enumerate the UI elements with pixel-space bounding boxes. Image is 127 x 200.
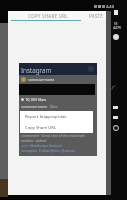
staticText: Nice	[50, 104, 58, 109]
staticText: user #landscape #nature	[21, 143, 62, 148]
staticText: Copy Share URL	[25, 125, 57, 131]
staticText: someusername	[21, 104, 48, 109]
staticText: Report Inappropriate	[25, 114, 67, 120]
staticText: 88	[114, 22, 118, 26]
staticText: 4:40	[106, 4, 114, 9]
staticText: Instagram	[21, 66, 52, 75]
staticText: another wicked	[21, 138, 47, 143]
staticText: 10,393 likes	[25, 97, 47, 102]
button[interactable]: Camera	[88, 66, 94, 72]
staticText: someusername	[28, 77, 55, 82]
button[interactable]: Report Inappropriate	[20, 111, 93, 122]
button[interactable]: COPY SHARE URL	[10, 11, 86, 20]
button[interactable]: Copy Share URL	[20, 122, 93, 133]
staticText: COPY SHARE URL	[28, 13, 68, 19]
staticText: instagram Follow @mtn @nature	[21, 148, 75, 153]
button[interactable]: PASTE	[86, 11, 106, 20]
staticText: 4479	[113, 25, 121, 30]
staticText: PASTE	[89, 13, 104, 19]
staticText: commenter Great shot of the mountain	[21, 133, 85, 138]
